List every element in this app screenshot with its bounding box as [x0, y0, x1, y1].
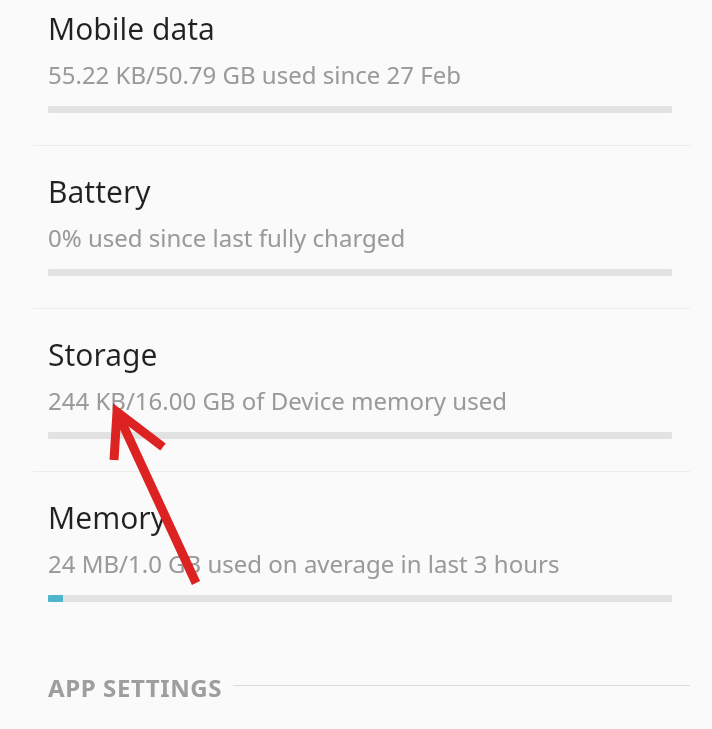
staticText: 24 MB/1.0 GB used on average in last 3 h… — [48, 547, 712, 580]
staticText: APP SETTINGS — [48, 671, 223, 704]
button[interactable]: Battery — [0, 169, 712, 299]
staticText: Memory — [48, 497, 167, 538]
button[interactable]: Memory — [0, 495, 712, 625]
staticText: Mobile data — [48, 8, 215, 49]
staticText: Storage — [48, 334, 158, 375]
button[interactable]: Mobile data — [0, 6, 712, 136]
staticText: Battery — [48, 171, 151, 212]
button[interactable]: Storage — [0, 332, 712, 462]
staticText: 244 KB/16.00 GB of Device memory used — [48, 384, 712, 417]
staticText: 0% used since last fully charged — [48, 221, 712, 254]
staticText: 55.22 KB/50.79 GB used since 27 Feb — [48, 58, 712, 91]
